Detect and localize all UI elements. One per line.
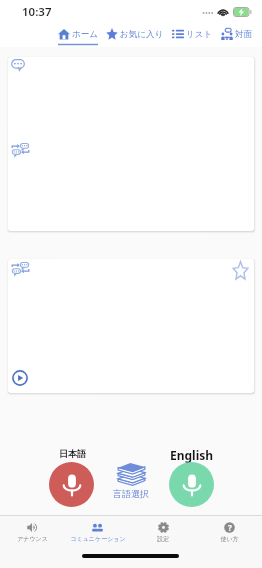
staticText: お気に入り	[120, 29, 164, 40]
button[interactable]: 言語選択	[113, 461, 149, 499]
button[interactable]	[8, 57, 254, 231]
staticText: 対面	[235, 29, 252, 40]
staticText: コミュニケーション	[70, 535, 126, 543]
button[interactable]: 対面	[221, 28, 252, 47]
staticText: ホーム	[72, 29, 98, 40]
button[interactable]: ?	[196, 516, 262, 548]
staticText: 使い方	[220, 535, 239, 543]
staticText: 設定	[157, 535, 169, 543]
button[interactable]: リスト	[172, 28, 213, 47]
button[interactable]: ホーム	[58, 28, 98, 47]
button[interactable]: コミュニケーション	[65, 516, 130, 548]
button[interactable]: 設定	[130, 516, 196, 548]
staticText: ?	[228, 522, 232, 533]
button[interactable]: お気に入り	[106, 28, 164, 47]
staticText: 10:37	[22, 4, 52, 20]
staticText: 日本語	[59, 448, 86, 459]
staticText: 言語選択	[113, 488, 149, 499]
button[interactable]: Favorite	[232, 261, 249, 280]
button[interactable]: Record Japanese	[49, 462, 94, 507]
staticText: アナウンス	[17, 535, 48, 543]
button[interactable]: Play	[12, 370, 28, 386]
button[interactable]: Record English	[169, 462, 214, 507]
staticText: English	[170, 447, 214, 463]
button[interactable]: Favorite	[8, 259, 254, 393]
button[interactable]: アナウンス	[0, 516, 65, 548]
staticText: リスト	[186, 29, 213, 40]
